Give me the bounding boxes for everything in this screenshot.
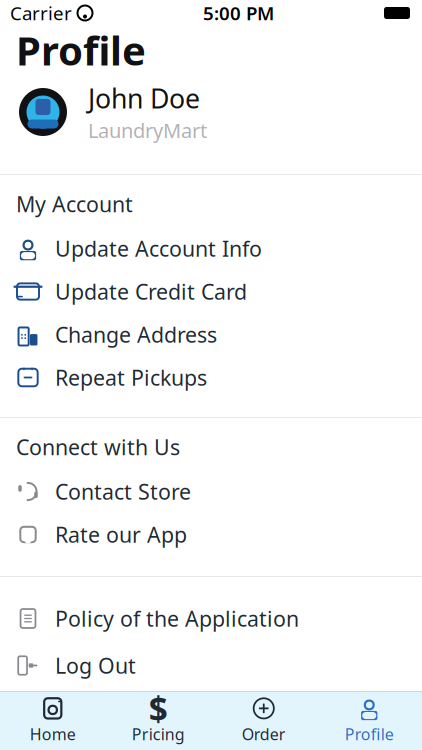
staticText: Log Out xyxy=(55,651,136,680)
button[interactable]: Rate our App xyxy=(0,513,422,556)
staticText: Connect with Us xyxy=(16,433,180,461)
staticText: My Account xyxy=(16,190,133,218)
staticText: LaundryMart xyxy=(88,117,207,143)
staticText: Order xyxy=(242,723,286,745)
button[interactable]: Profile xyxy=(316,696,422,746)
staticText: $ xyxy=(149,686,168,730)
button[interactable]: Update Credit Card xyxy=(0,270,422,313)
button[interactable]: Log Out xyxy=(0,644,422,687)
staticText: Profile xyxy=(345,723,394,745)
staticText: John Doe xyxy=(88,80,200,116)
button[interactable]: Home xyxy=(0,696,105,746)
button[interactable]: Order xyxy=(211,696,316,746)
staticText: Change Address xyxy=(55,320,217,349)
button[interactable]: Change Address xyxy=(0,313,422,356)
staticText: Policy of the Application xyxy=(55,604,299,633)
staticText: Update Account Info xyxy=(55,234,262,263)
button[interactable]: Update Account Info xyxy=(0,227,422,270)
button[interactable]: $ xyxy=(105,696,211,746)
staticText: Repeat Pickups xyxy=(55,363,207,392)
staticText: Carrier xyxy=(10,1,72,25)
staticText: Profile xyxy=(16,23,146,76)
staticText: 5:00 PM xyxy=(203,1,274,25)
staticText: Rate our App xyxy=(55,520,187,549)
staticText: Pricing xyxy=(132,723,185,745)
staticText: Update Credit Card xyxy=(55,277,247,306)
button[interactable]: Policy of the Application xyxy=(0,597,422,640)
staticText: Contact Store xyxy=(55,477,191,506)
button[interactable]: Contact Store xyxy=(0,470,422,513)
button[interactable]: Repeat Pickups xyxy=(0,356,422,399)
staticText: Home xyxy=(30,723,76,745)
